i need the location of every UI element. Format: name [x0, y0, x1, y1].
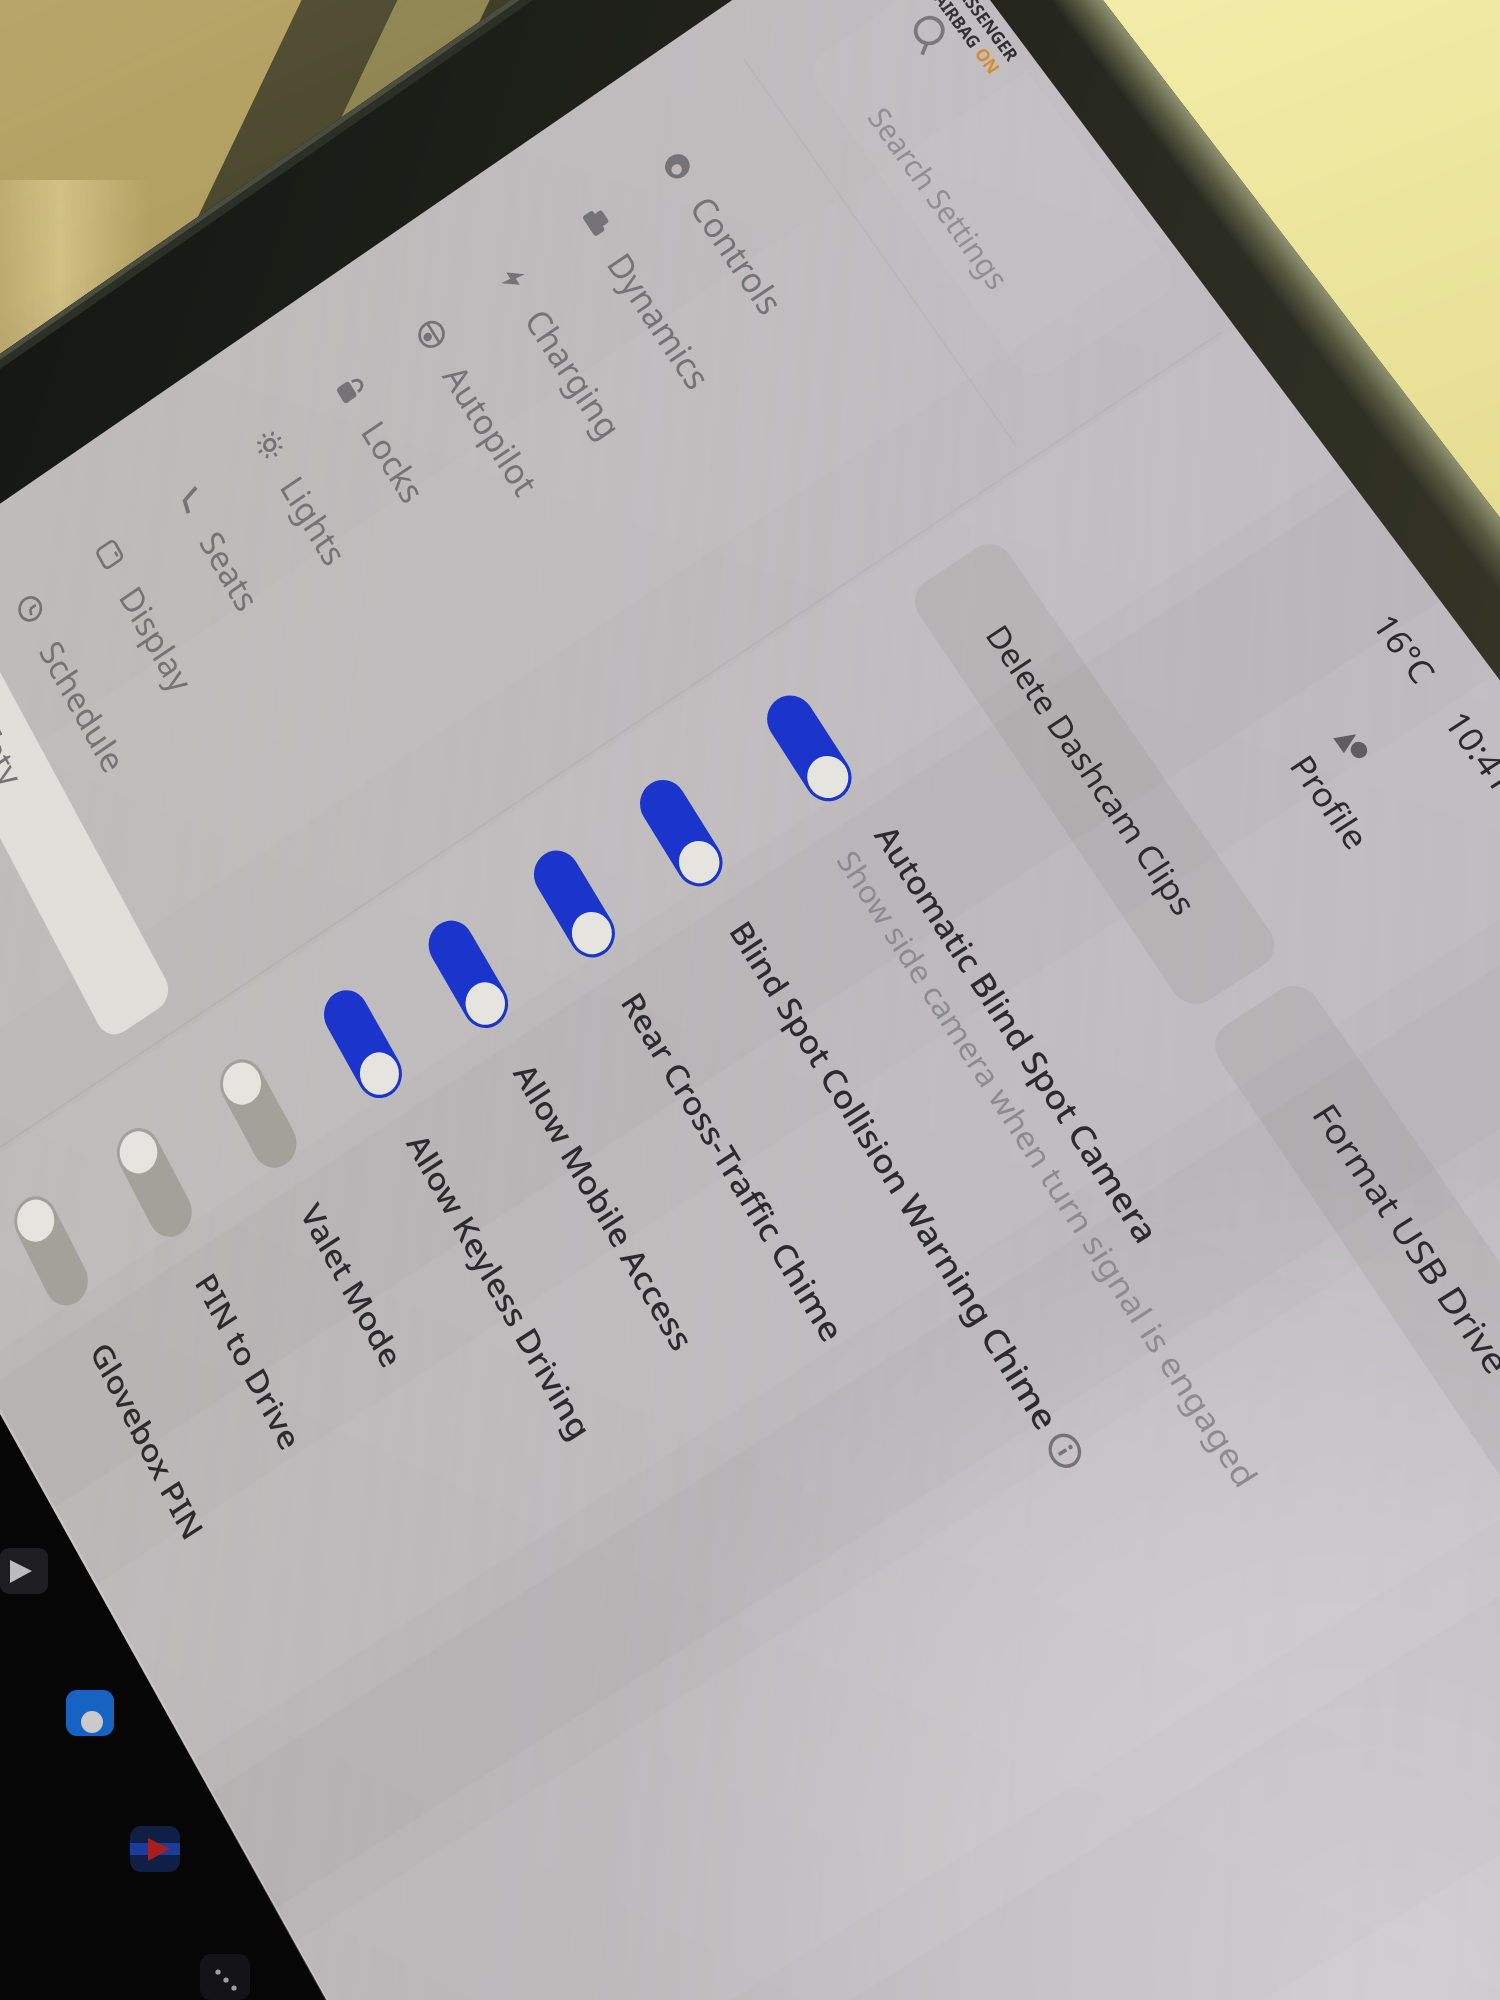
button[interactable]: Blind Spot Collision Warning Chime: [605, 749, 1113, 1484]
button[interactable]: Format USB Drive: [1207, 980, 1500, 1518]
button[interactable]: Allow Mobile Access: [395, 890, 879, 1633]
button[interactable]: Display: [46, 478, 345, 933]
button[interactable]: Automatic Blind Spot Camera: [732, 664, 1255, 1395]
button[interactable]: Seats: [125, 424, 430, 877]
button[interactable]: Delete Dashcam Clips: [906, 535, 1284, 1014]
button[interactable]: PIN to Drive: [84, 1097, 533, 1850]
button[interactable]: Valet Mode: [187, 1029, 648, 1779]
button[interactable]: Charging: [445, 203, 773, 648]
button[interactable]: Autopilot: [365, 259, 687, 706]
button[interactable]: Safety: [0, 586, 177, 1044]
button[interactable]: Glovebox PIN: [0, 1166, 420, 1923]
button[interactable]: Lights: [205, 369, 515, 820]
button[interactable]: Dynamics: [526, 147, 860, 590]
button[interactable]: Rear Cross-Traffic Chime: [499, 819, 995, 1558]
button[interactable]: Software: [0, 693, 11, 1155]
button[interactable]: Profile: [1241, 686, 1474, 934]
button[interactable]: Controls: [608, 91, 948, 532]
button[interactable]: Locks: [285, 314, 601, 763]
button[interactable]: Schedule: [0, 532, 261, 988]
button[interactable]: Service: [0, 640, 94, 1100]
button[interactable]: Allow Keyless Driving: [290, 959, 762, 1705]
button[interactable]: Search Settings: [808, 0, 1197, 406]
